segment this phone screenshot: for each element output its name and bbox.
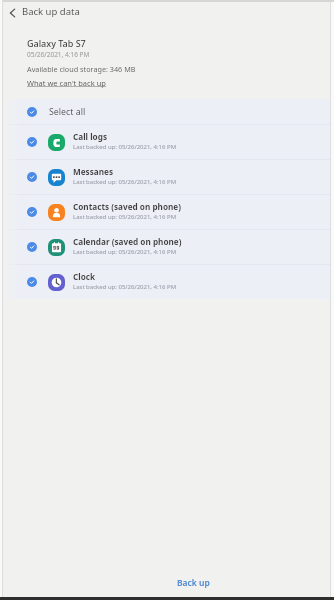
staticText: Back up — [177, 577, 210, 589]
button[interactable]: Back up — [169, 571, 218, 595]
staticText: Last backed up: 05/26/2021, 4:16 PM — [73, 248, 177, 256]
button[interactable]: Back — [1, 1, 25, 25]
staticText: Call logs — [73, 131, 108, 142]
button[interactable]: Call logs — [3, 125, 331, 159]
button[interactable]: What we can't back up — [27, 78, 106, 88]
staticText: Galaxy Tab S7 — [27, 37, 86, 49]
button[interactable]: Contacts (saved on phone) — [3, 195, 331, 229]
staticText: Messanes — [73, 166, 114, 177]
staticText: Clock — [73, 271, 96, 282]
staticText: Last backed up: 05/26/2021, 4:16 PM — [73, 283, 177, 291]
button[interactable]: Calendar (saved on phone) — [3, 230, 331, 264]
staticText: Last backed up: 05/26/2021, 4:16 PM — [73, 213, 177, 221]
button[interactable]: Clock — [3, 265, 331, 299]
staticText: Last backed up: 05/26/2021, 4:16 PM — [73, 143, 177, 151]
staticText: Back up data — [22, 5, 80, 18]
button[interactable]: Select all — [3, 99, 331, 124]
staticText: What we can't back up — [27, 78, 106, 88]
staticText: Calendar (saved on phone) — [73, 236, 182, 247]
staticText: Contacts (saved on phone) — [73, 201, 181, 212]
staticText: Select all — [49, 106, 86, 118]
staticText: Available cloud storage: 346 MB — [27, 64, 136, 74]
staticText: 05/26/2021, 4:16 PM — [27, 50, 90, 59]
staticText: Last backed up: 05/26/2021, 4:16 PM — [73, 178, 177, 186]
button[interactable]: Messanes — [3, 160, 331, 194]
